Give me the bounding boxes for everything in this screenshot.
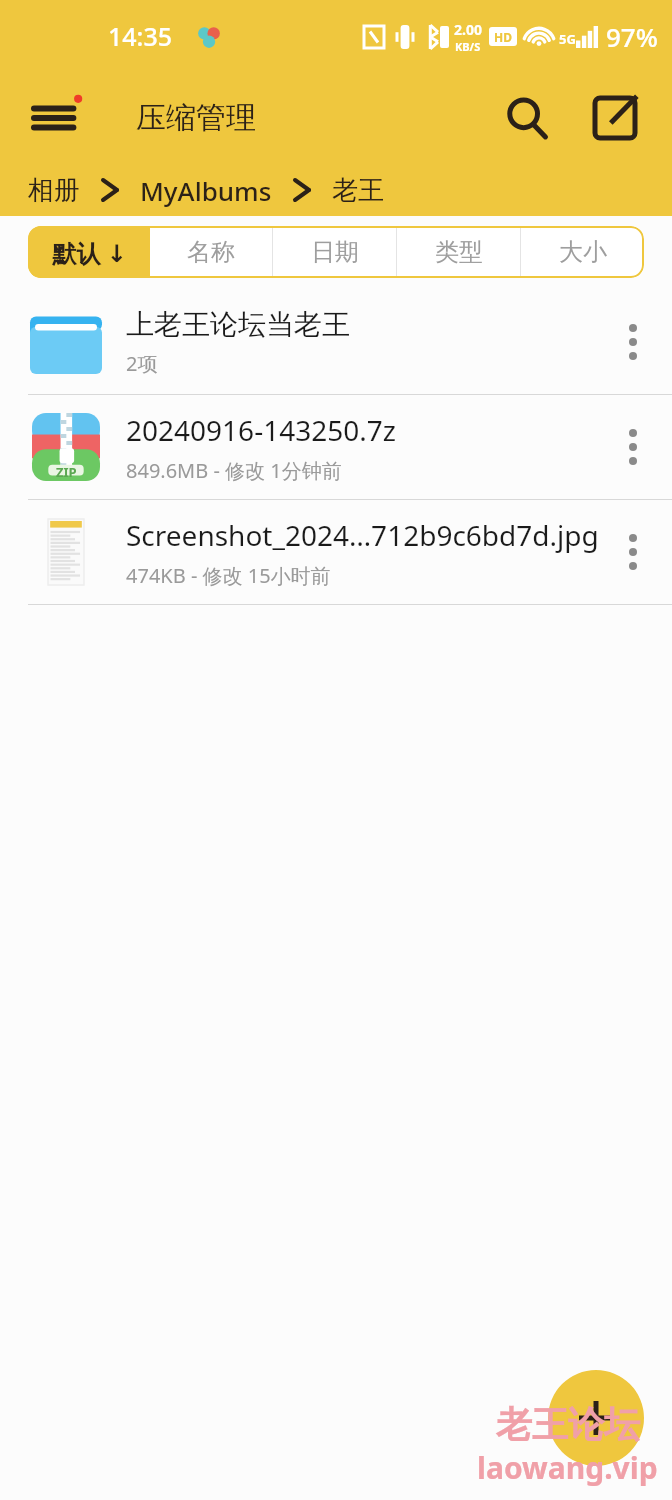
staticText: 20240916-143250.7z <box>126 411 396 449</box>
staticText: 日期 <box>311 237 359 267</box>
staticText: 2项 <box>126 350 158 377</box>
button[interactable]: 名称 <box>150 226 272 278</box>
button[interactable]: Add <box>548 1370 644 1466</box>
staticText: 849.6MB - 修改 1分钟前 <box>126 457 342 484</box>
button[interactable]: 相册 <box>26 174 82 207</box>
staticText: 2.00 <box>454 20 482 39</box>
staticText: 97% <box>606 19 658 54</box>
button[interactable]: More options <box>602 521 664 583</box>
staticText: KB/S <box>455 39 481 54</box>
staticText: 老王论坛 <box>496 1402 640 1447</box>
staticText: 名称 <box>187 237 235 267</box>
staticText: 上老王论坛当老王 <box>126 307 350 342</box>
button[interactable]: Screenshot_2024…712b9c6bd7d.jpg <box>0 500 672 604</box>
button[interactable]: More options <box>602 311 664 373</box>
button[interactable]: ZIP <box>0 395 672 499</box>
staticText: HD <box>494 29 512 45</box>
button[interactable]: MyAlbums <box>138 173 274 208</box>
button[interactable]: 大小 <box>521 226 644 278</box>
button[interactable]: 日期 <box>273 226 396 278</box>
button[interactable]: Search <box>496 87 558 149</box>
button[interactable]: More options <box>602 416 664 478</box>
button[interactable]: Menu <box>30 90 86 146</box>
staticText: 类型 <box>435 237 483 267</box>
staticText: MyAlbums <box>140 173 272 208</box>
button[interactable]: Compose <box>584 87 646 149</box>
staticText: 大小 <box>559 237 607 267</box>
button[interactable]: 上老王论坛当老王 <box>0 290 672 394</box>
staticText: 474KB - 修改 15小时前 <box>126 562 331 589</box>
staticText: 默认 ↓ <box>52 236 127 269</box>
staticText: 压缩管理 <box>136 99 256 137</box>
button[interactable]: 老王 <box>330 174 386 207</box>
staticText: Screenshot_2024…712b9c6bd7d.jpg <box>126 516 599 554</box>
staticText: laowang.vip <box>477 1447 658 1488</box>
button[interactable]: 类型 <box>397 226 520 278</box>
staticText: 14:35 <box>108 19 173 53</box>
staticText: 5G <box>559 30 576 48</box>
staticText: 相册 <box>28 174 80 207</box>
staticText: 老王 <box>332 174 384 207</box>
staticText: ZIP <box>56 463 77 481</box>
button[interactable]: 默认 ↓ <box>28 226 150 278</box>
